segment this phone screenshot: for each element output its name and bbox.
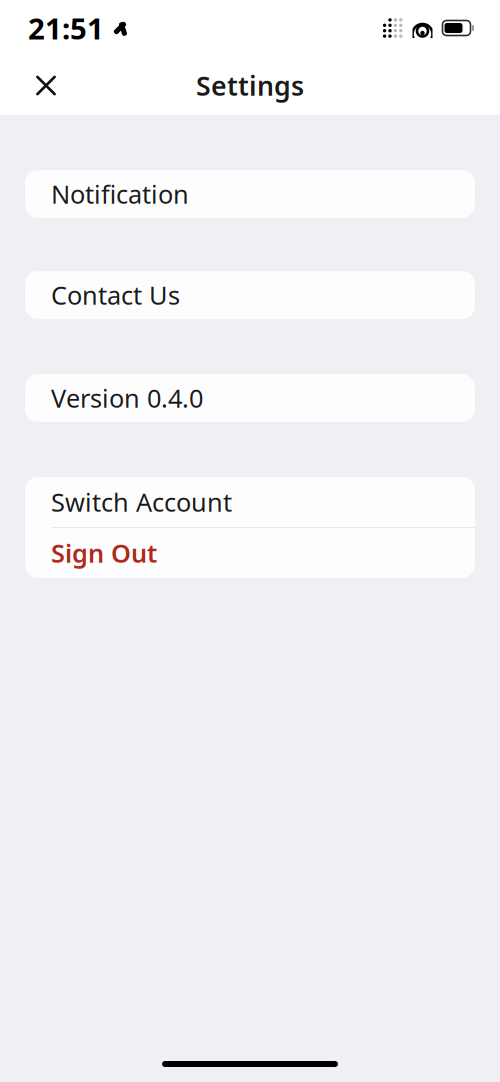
button[interactable]: Contact Us [25,271,475,319]
staticText: Settings [196,68,304,103]
staticText: Version 0.4.0 [51,381,203,415]
button[interactable]: Close [19,58,73,112]
staticText: Notification [51,177,189,211]
staticText: 21:51 [28,8,104,47]
staticText: Sign Out [51,536,157,570]
button[interactable]: Switch Account [25,477,475,527]
staticText: Switch Account [51,485,232,519]
button[interactable]: Notification [25,170,475,218]
button[interactable]: Sign Out [25,528,475,578]
staticText: Contact Us [51,278,180,312]
